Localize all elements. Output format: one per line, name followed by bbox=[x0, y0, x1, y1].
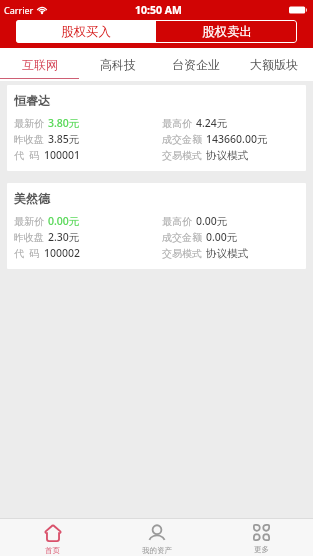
staticText: 0.00元 bbox=[206, 230, 238, 244]
staticText: 代 码 bbox=[14, 246, 40, 260]
staticText: 交易模式 bbox=[162, 149, 202, 162]
staticText: 大额版块 bbox=[250, 57, 298, 72]
staticText: 更多 bbox=[254, 545, 269, 554]
staticText: 协议模式 bbox=[206, 247, 248, 260]
staticText: 交易模式 bbox=[162, 247, 202, 260]
staticText: 0.00元 bbox=[48, 214, 80, 228]
staticText: 143660.00元 bbox=[206, 132, 268, 146]
staticText: 代 码 bbox=[14, 148, 40, 162]
staticText: 股权买入 bbox=[61, 24, 111, 40]
staticText: 0.00元 bbox=[196, 214, 228, 228]
staticText: 我的资产 bbox=[142, 546, 172, 555]
staticText: 3.85元 bbox=[48, 132, 80, 146]
staticText: 100002 bbox=[44, 246, 81, 260]
button[interactable]: Home bbox=[0, 519, 105, 556]
staticText: 最新价 bbox=[14, 117, 44, 130]
button[interactable]: 互联网 bbox=[0, 48, 79, 81]
staticText: 昨收盘 bbox=[14, 133, 44, 146]
button[interactable]: 台资企业 bbox=[157, 48, 235, 81]
staticText: 10:50 AM bbox=[135, 3, 182, 17]
staticText: 100001 bbox=[44, 148, 81, 162]
staticText: 互联网 bbox=[22, 57, 58, 72]
staticText: 高科技 bbox=[100, 57, 136, 72]
staticText: 最高价 bbox=[162, 215, 192, 228]
button[interactable]: 大额版块 bbox=[235, 48, 313, 81]
button[interactable]: 股权卖出 bbox=[156, 20, 297, 43]
staticText: 最新价 bbox=[14, 215, 44, 228]
staticText: Carrier bbox=[4, 4, 34, 16]
button[interactable]: 恒睿达 bbox=[7, 85, 306, 171]
staticText: 成交金额 bbox=[162, 133, 202, 146]
button[interactable]: More bbox=[209, 519, 313, 556]
staticText: 协议模式 bbox=[206, 149, 248, 162]
staticText: 3.80元 bbox=[48, 116, 80, 130]
button[interactable]: 高科技 bbox=[79, 48, 157, 81]
staticText: 台资企业 bbox=[172, 57, 220, 72]
staticText: 恒睿达 bbox=[14, 93, 50, 108]
staticText: 美然德 bbox=[14, 191, 50, 206]
staticText: 成交金额 bbox=[162, 231, 202, 244]
button[interactable]: 美然德 bbox=[7, 183, 306, 269]
staticText: 最高价 bbox=[162, 117, 192, 130]
button[interactable]: 股权买入 bbox=[16, 20, 156, 43]
staticText: 2.30元 bbox=[48, 230, 80, 244]
staticText: 昨收盘 bbox=[14, 231, 44, 244]
staticText: 股权卖出 bbox=[202, 24, 252, 40]
staticText: 4.24元 bbox=[196, 116, 228, 130]
staticText: 首页 bbox=[45, 546, 60, 555]
button[interactable]: My assets bbox=[105, 519, 209, 556]
